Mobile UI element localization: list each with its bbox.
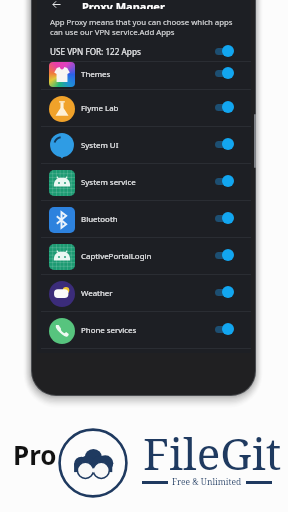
staticText: USE VPN FOR: 122 Apps [50,46,141,57]
staticText: System UI [81,140,119,151]
button[interactable]: System UI [37,127,251,164]
staticText: Bluetooth [81,214,118,225]
button[interactable]: Themes [37,62,251,87]
button[interactable]: CaptivePortalLogin [37,238,251,275]
staticText: Proxy Manager [82,0,165,9]
button[interactable]: System service [37,164,251,201]
button[interactable]: Back [50,0,63,9]
button[interactable]: Flyme Lab [37,90,251,127]
button[interactable]: Bluetooth [37,201,251,238]
staticText: App Proxy means that you can choose whic… [50,17,233,37]
staticText: Themes [81,69,111,80]
staticText: System service [81,177,136,188]
staticText: Pro [13,437,57,472]
button[interactable]: USE VPN FOR: 122 Apps [37,40,251,62]
staticText: Weather [81,288,113,299]
button[interactable]: Weather [37,275,251,312]
staticText: CaptivePortalLogin [81,251,152,262]
staticText: Phone services [81,325,137,336]
button[interactable]: Phone services [37,312,251,349]
staticText: FileGit [143,423,282,483]
staticText: Flyme Lab [81,103,119,114]
staticText: Free & Unlimited [172,476,242,488]
